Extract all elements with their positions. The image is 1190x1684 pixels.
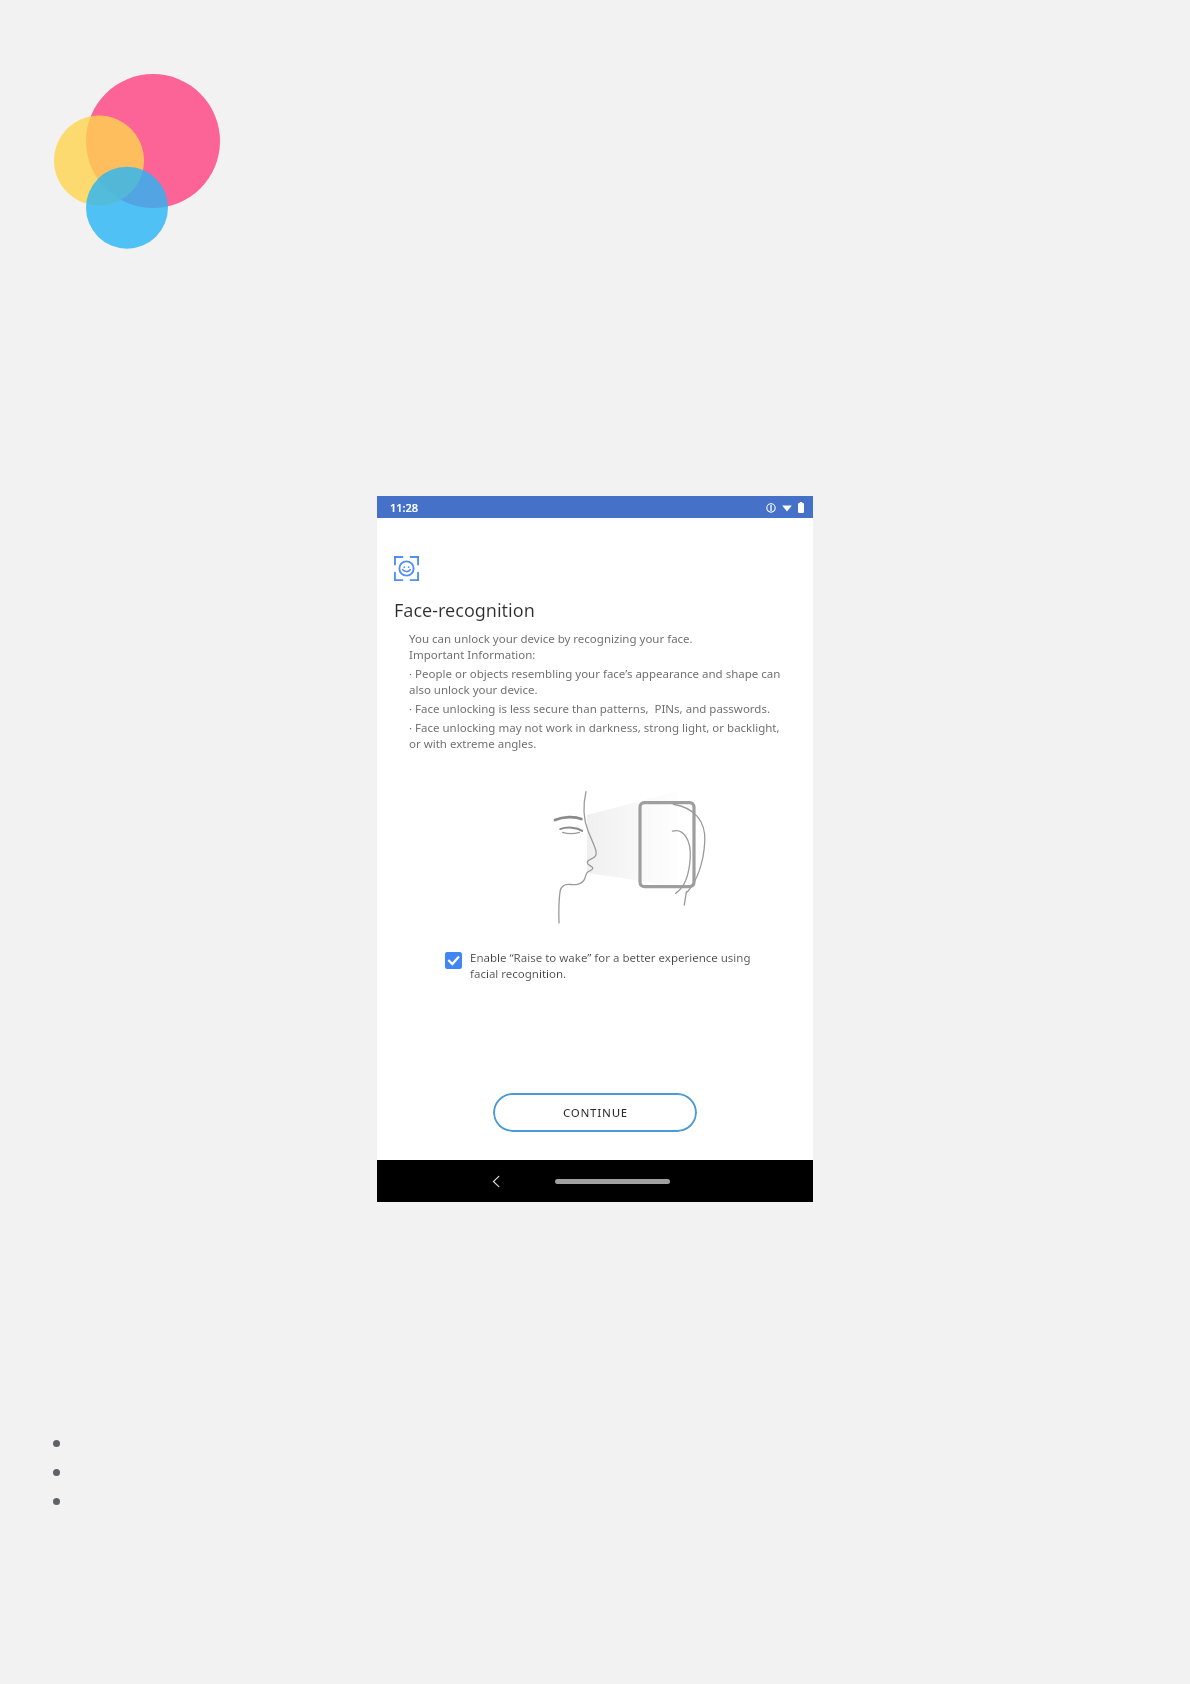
- button[interactable]: Back: [479, 1164, 513, 1198]
- staticText: CONTINUE: [563, 1105, 628, 1121]
- button[interactable]: Enable “Raise to wake” for a better expe…: [445, 950, 753, 982]
- staticText: · People or objects resembling your face…: [409, 666, 791, 698]
- staticText: Enable “Raise to wake” for a better expe…: [470, 950, 753, 982]
- staticText: · Face unlocking is less secure than pat…: [409, 701, 771, 717]
- staticText: 11:28: [390, 500, 419, 515]
- staticText: Important Information:: [409, 647, 536, 663]
- staticText: Face-recognition: [394, 598, 535, 623]
- button[interactable]: CONTINUE: [493, 1093, 697, 1132]
- button[interactable]: Home: [555, 1173, 670, 1189]
- staticText: · Face unlocking may not work in darknes…: [409, 720, 791, 752]
- staticText: You can unlock your device by recognizin…: [409, 631, 693, 647]
